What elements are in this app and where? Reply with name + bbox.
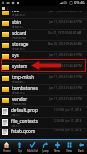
staticText: sys [12, 52, 19, 58]
button[interactable]: sbin [0, 18, 87, 29]
staticText: tombstones [12, 85, 38, 91]
staticText: -rw-r--r-- [11, 113, 22, 117]
staticText: New [54, 149, 60, 153]
staticText: drwxr-xr-x [12, 13, 25, 17]
button[interactable]: fstab.qcom [0, 128, 87, 135]
staticText: 4G [63, 1, 68, 5]
staticText: Jun 11, 2014 01:40:31 PM [49, 86, 82, 90]
staticText: sdcard [12, 30, 27, 36]
staticText: 2.26 KB Jun 11, 2014 [54, 119, 82, 123]
button[interactable]: vendor [0, 95, 87, 106]
staticText: Oct 31, 1970 05:00:00 AM [48, 31, 82, 35]
staticText: drwxr-x--- [12, 25, 24, 29]
staticText: file_contexts [11, 118, 38, 124]
button[interactable]: sdcard [0, 29, 87, 40]
staticText: vendor [12, 96, 28, 102]
staticText: lrwxrwxrwx [12, 36, 27, 40]
button[interactable]: Root [0, 6, 87, 11]
staticText: drwxr-xr-x [12, 91, 25, 95]
staticText: Nov 26, 2014 09:26:40 AM [48, 42, 82, 46]
button[interactable]: New [51, 140, 63, 154]
staticText: Up [18, 149, 22, 153]
staticText: 1.03 KB Jun 11, 2014 [54, 108, 82, 112]
staticText: Jun 11, 2014 01:40:37 PM [49, 20, 82, 24]
button[interactable]: file_contexts [0, 117, 87, 128]
button[interactable]: storage [0, 40, 87, 51]
staticText: Jun 11, 2014 01:40:31 PM [49, 53, 82, 57]
button[interactable]: Back [75, 140, 87, 154]
button[interactable]: system [0, 62, 87, 73]
staticText: Jun 11, 2014 01:40:31 PM [49, 75, 82, 79]
button[interactable]: sys [0, 51, 87, 62]
staticText: Jump [42, 149, 49, 153]
staticText: storage [12, 41, 29, 47]
staticText: Jun 11, 2014 01:40:48 PM [49, 64, 82, 68]
staticText: sbin [12, 19, 22, 25]
button[interactable]: View [63, 140, 75, 154]
staticText: drwxrwx--- [12, 80, 26, 84]
staticText: res [12, 11, 19, 13]
staticText: Back [78, 149, 84, 153]
button[interactable]: Multi-Sel [26, 140, 39, 154]
staticText: dr-xr-xr-x [12, 58, 24, 62]
staticText: drwxr-xr-x [12, 47, 25, 51]
staticText: Multi-Sel [27, 149, 38, 153]
staticText: system [12, 63, 28, 69]
staticText: drwxr-xr-x [12, 69, 25, 73]
button[interactable]: tombstones [0, 84, 87, 95]
staticText: tmp-mksh [12, 74, 35, 80]
staticText: Jun 11, 2014 01:40:37 PM [49, 11, 82, 13]
button[interactable]: Up [13, 140, 26, 154]
staticText: / [7, 6, 9, 11]
staticText: 09:46 [74, 0, 85, 6]
staticText: -rw-r--r-- [11, 124, 22, 128]
staticText: 1.85 KB Jun 11, 2014 [54, 128, 82, 132]
button[interactable]: tmp-mksh [0, 73, 87, 84]
button[interactable]: Home [0, 140, 13, 154]
staticText: Jun 11, 2014 01:40:31 PM [49, 97, 82, 101]
staticText: lrwxrwxrwx [12, 102, 27, 106]
staticText: Home [3, 149, 11, 153]
staticText: default.prop [11, 107, 38, 113]
button[interactable]: Jump [39, 140, 51, 154]
staticText: View [66, 149, 72, 153]
staticText: fstab.qcom [11, 128, 36, 134]
button[interactable]: default.prop [0, 106, 87, 117]
